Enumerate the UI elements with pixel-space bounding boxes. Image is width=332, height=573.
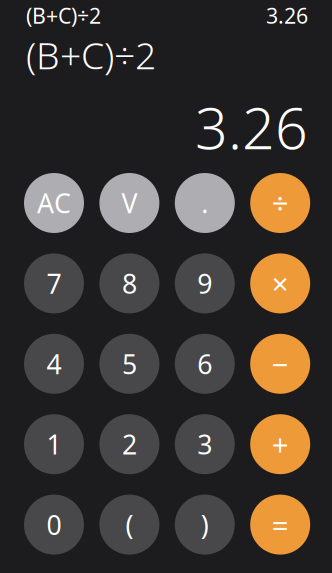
staticText: (B+C)÷2 bbox=[26, 30, 156, 80]
button[interactable]: 4 bbox=[24, 334, 84, 394]
staticText: 8 bbox=[122, 266, 137, 301]
button[interactable]: 1 bbox=[24, 414, 84, 474]
button[interactable]: Open parenthesis bbox=[99, 495, 159, 555]
staticText: − bbox=[272, 344, 289, 383]
button[interactable]: 2 bbox=[99, 414, 159, 474]
button[interactable]: 6 bbox=[175, 334, 235, 394]
staticText: 4 bbox=[46, 346, 61, 381]
staticText: ) bbox=[201, 507, 209, 542]
button[interactable]: V bbox=[99, 173, 159, 233]
staticText: 3 bbox=[197, 426, 212, 462]
staticText: 5 bbox=[122, 346, 137, 381]
button[interactable]: 5 bbox=[99, 334, 159, 394]
button[interactable]: 7 bbox=[24, 253, 84, 313]
staticText: 3.26 bbox=[266, 1, 308, 30]
staticText: 6 bbox=[197, 346, 212, 381]
button[interactable]: 8 bbox=[99, 253, 159, 313]
staticText: 9 bbox=[197, 266, 212, 301]
button[interactable]: Divide bbox=[250, 173, 310, 233]
staticText: 7 bbox=[46, 266, 61, 301]
staticText: × bbox=[272, 264, 289, 303]
staticText: 1 bbox=[46, 426, 61, 462]
button[interactable]: Equals bbox=[250, 495, 310, 555]
staticText: (B+C)÷2 bbox=[26, 1, 101, 30]
button[interactable]: 9 bbox=[175, 253, 235, 313]
staticText: = bbox=[272, 505, 289, 544]
button[interactable]: Subtract bbox=[250, 334, 310, 394]
staticText: + bbox=[272, 425, 289, 464]
staticText: 0 bbox=[46, 507, 61, 542]
staticText: 2 bbox=[122, 426, 137, 462]
button[interactable]: Multiply bbox=[250, 253, 310, 313]
staticText: . bbox=[201, 185, 208, 221]
staticText: ÷ bbox=[272, 183, 289, 222]
staticText: AC bbox=[37, 185, 71, 221]
button[interactable]: Add bbox=[250, 414, 310, 474]
button[interactable]: Decimal point bbox=[175, 173, 235, 233]
button[interactable]: Close parenthesis bbox=[175, 495, 235, 555]
staticText: 3.26 bbox=[195, 89, 308, 165]
button[interactable]: All Clear bbox=[24, 173, 84, 233]
staticText: V bbox=[121, 185, 137, 221]
button[interactable]: 0 bbox=[24, 495, 84, 555]
staticText: ( bbox=[125, 507, 133, 542]
button[interactable]: 3 bbox=[175, 414, 235, 474]
